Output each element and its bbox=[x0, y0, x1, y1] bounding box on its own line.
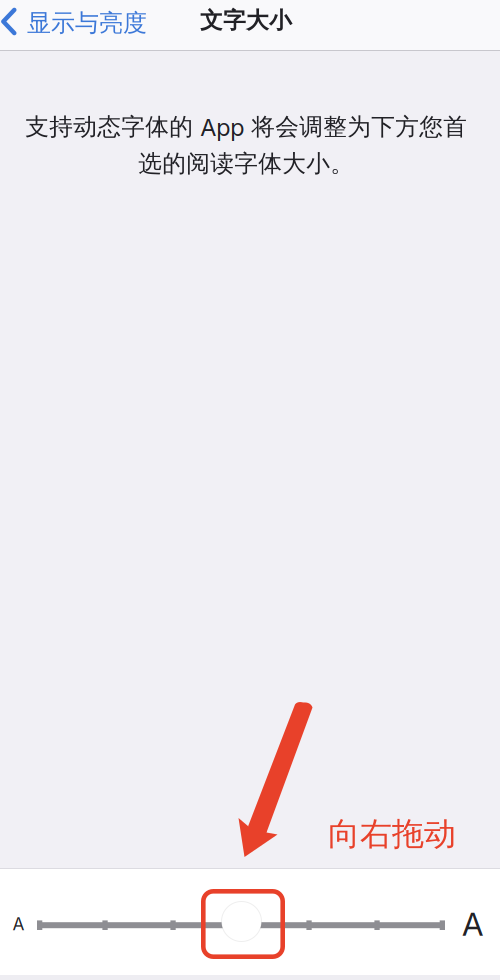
button[interactable]: 文字大小 bbox=[0, 11, 500, 40]
staticText: 支持动态字体的 App 将会调整为下方您首 选的阅读字体大小。 bbox=[25, 112, 467, 179]
staticText: A bbox=[12, 913, 24, 934]
button[interactable]: 文字大小滑块 bbox=[221, 901, 261, 941]
staticText: 文字大小 bbox=[200, 6, 292, 35]
button[interactable]: 显示与亮度 bbox=[0, 10, 147, 41]
staticText: 向右拖动 bbox=[328, 814, 456, 854]
staticText: 显示与亮度 bbox=[27, 8, 147, 38]
staticText: A bbox=[462, 905, 483, 943]
